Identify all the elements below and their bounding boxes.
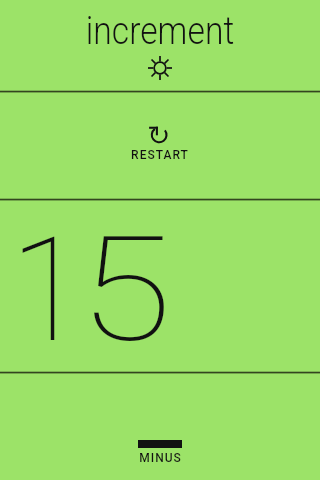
- button[interactable]: RESTART: [0, 92, 320, 199]
- button[interactable]: Toggle brightness: [136, 44, 184, 92]
- button[interactable]: Increment counter: [0, 200, 320, 372]
- staticText: increment: [86, 9, 234, 51]
- staticText: RESTART: [131, 148, 189, 162]
- staticText: 1: [10, 205, 86, 375]
- staticText: MINUS: [139, 451, 182, 465]
- staticText: 5: [79, 205, 173, 375]
- button[interactable]: MINUS: [0, 373, 320, 480]
